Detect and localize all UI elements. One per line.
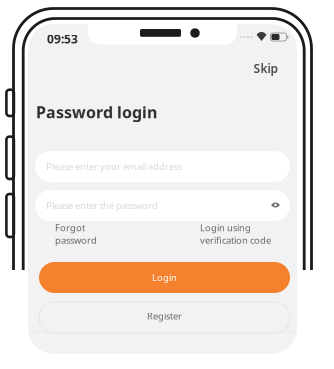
staticText: Forgot password [55,221,97,246]
staticText: Register [147,310,182,322]
staticText: Password login [36,101,157,123]
button[interactable]: Login [39,262,290,293]
staticText: Please enter your email address [46,160,182,173]
staticText: Please enter the password [46,199,158,212]
button[interactable]: Login using verification code [181,221,271,246]
staticText: Login using verification code [200,221,271,246]
button[interactable]: Forgot password [55,221,117,246]
button[interactable]: Register [39,302,290,333]
button[interactable]: Skip [248,55,283,81]
staticText: Login [152,271,177,284]
staticText: Skip [253,60,278,76]
staticText: 09:53 [47,31,78,47]
